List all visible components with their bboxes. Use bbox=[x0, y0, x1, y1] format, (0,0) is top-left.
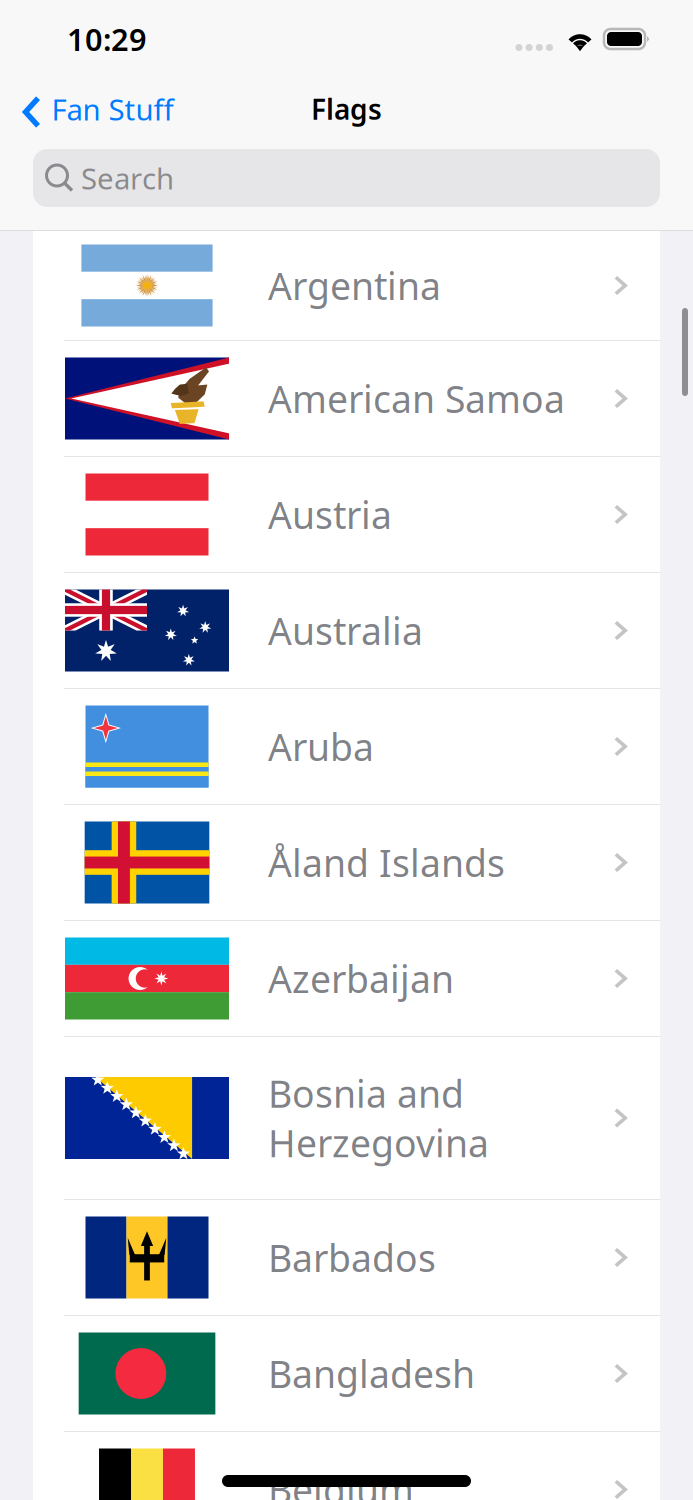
button[interactable]: Argentina bbox=[33, 231, 660, 340]
staticText: Fan Stuff bbox=[51, 89, 173, 128]
button[interactable]: American Samoa bbox=[33, 341, 660, 456]
staticText: Search bbox=[81, 158, 174, 197]
button[interactable]: Bangladesh bbox=[33, 1316, 660, 1431]
staticText: Åland Islands bbox=[268, 838, 505, 887]
staticText: Austria bbox=[268, 490, 392, 539]
button[interactable]: Fan Stuff bbox=[0, 79, 187, 139]
button[interactable]: Barbados bbox=[33, 1200, 660, 1315]
staticText: 10:29 bbox=[67, 19, 147, 59]
staticText: Belgium bbox=[268, 1465, 414, 1500]
staticText: Aruba bbox=[268, 722, 374, 771]
staticText: Australia bbox=[268, 606, 423, 655]
staticText: Bangladesh bbox=[268, 1349, 475, 1398]
staticText: Bosnia and Herzegovina bbox=[268, 1068, 489, 1168]
button[interactable]: Search bbox=[33, 149, 660, 207]
staticText: Argentina bbox=[268, 261, 441, 310]
button[interactable]: Bosnia and Herzegovina bbox=[33, 1037, 660, 1199]
button[interactable]: Azerbaijan bbox=[33, 921, 660, 1036]
staticText: Azerbaijan bbox=[268, 954, 454, 1003]
button[interactable]: Belgium bbox=[33, 1432, 660, 1500]
staticText: Barbados bbox=[268, 1233, 436, 1282]
button[interactable]: Austria bbox=[33, 457, 660, 572]
button[interactable]: Åland Islands bbox=[33, 805, 660, 920]
button[interactable]: Aruba bbox=[33, 689, 660, 804]
staticText: Flags bbox=[311, 90, 382, 128]
staticText: American Samoa bbox=[268, 374, 565, 423]
button[interactable]: Australia bbox=[33, 573, 660, 688]
